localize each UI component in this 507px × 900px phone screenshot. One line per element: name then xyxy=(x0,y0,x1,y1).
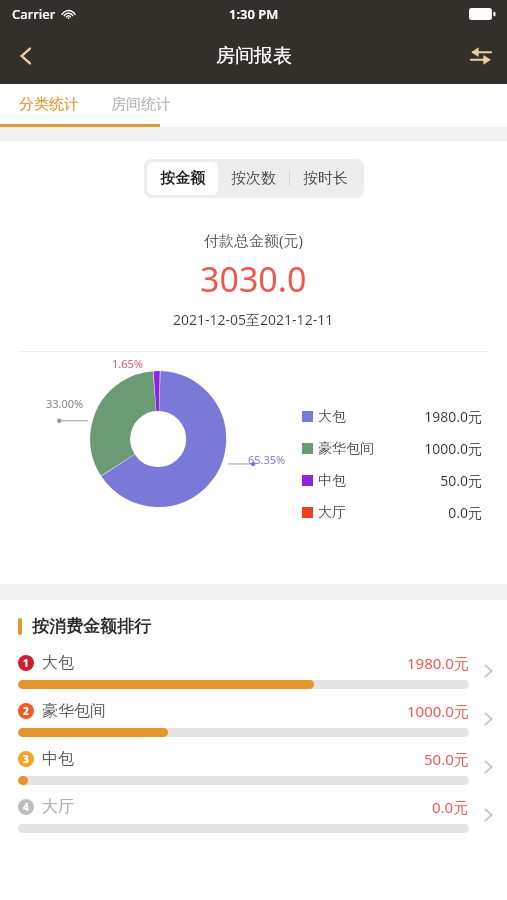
button[interactable]: 4 xyxy=(0,791,507,839)
button[interactable]: 3 xyxy=(0,743,507,791)
staticText: 0.0元 xyxy=(448,503,482,522)
staticText: 按次数 xyxy=(231,169,276,188)
button[interactable]: 1 xyxy=(0,647,507,695)
staticText: 大包 xyxy=(318,408,346,426)
staticText: 2 xyxy=(23,704,29,718)
button[interactable]: Switch xyxy=(455,30,507,82)
staticText: 65.35% xyxy=(248,452,286,467)
button[interactable]: 按金额 xyxy=(147,162,218,195)
staticText: 1980.0元 xyxy=(407,653,469,673)
staticText: 1000.0元 xyxy=(407,701,469,721)
staticText: 豪华包间 xyxy=(42,701,106,721)
staticText: 按消费金额排行 xyxy=(32,616,151,637)
staticText: 3030.0 xyxy=(200,256,307,302)
staticText: 中包 xyxy=(318,472,346,490)
staticText: 50.0元 xyxy=(424,749,469,769)
staticText: 大包 xyxy=(42,653,74,673)
staticText: 1000.0元 xyxy=(424,439,482,458)
staticText: 付款总金额(元) xyxy=(204,230,304,250)
staticText: 豪华包间 xyxy=(318,440,374,458)
button[interactable]: 房间统计 xyxy=(106,89,176,120)
button[interactable]: Back xyxy=(0,30,52,82)
staticText: 1 xyxy=(23,656,29,670)
staticText: 房间报表 xyxy=(216,44,292,68)
staticText: 2021-12-05至2021-12-11 xyxy=(173,310,334,329)
staticText: 50.0元 xyxy=(440,471,482,490)
staticText: 大厅 xyxy=(42,797,74,817)
staticText: 1.65% xyxy=(112,356,143,371)
staticText: 4 xyxy=(23,800,29,814)
staticText: 按金额 xyxy=(160,169,205,188)
staticText: 0.0元 xyxy=(432,797,469,817)
staticText: 33.00% xyxy=(46,396,84,411)
staticText: 中包 xyxy=(42,749,74,769)
staticText: 1:30 PM xyxy=(229,5,279,23)
button[interactable]: 按次数 xyxy=(218,162,289,195)
staticText: 按时长 xyxy=(303,169,348,188)
staticText: 大厅 xyxy=(318,504,346,522)
staticText: 分类统计 xyxy=(19,95,79,114)
staticText: Carrier xyxy=(12,5,56,23)
button[interactable]: 分类统计 xyxy=(14,89,84,120)
staticText: 1980.0元 xyxy=(424,407,482,426)
staticText: 房间统计 xyxy=(111,95,171,114)
button[interactable]: 2 xyxy=(0,695,507,743)
staticText: 3 xyxy=(23,752,29,766)
button[interactable]: 按时长 xyxy=(290,162,361,195)
